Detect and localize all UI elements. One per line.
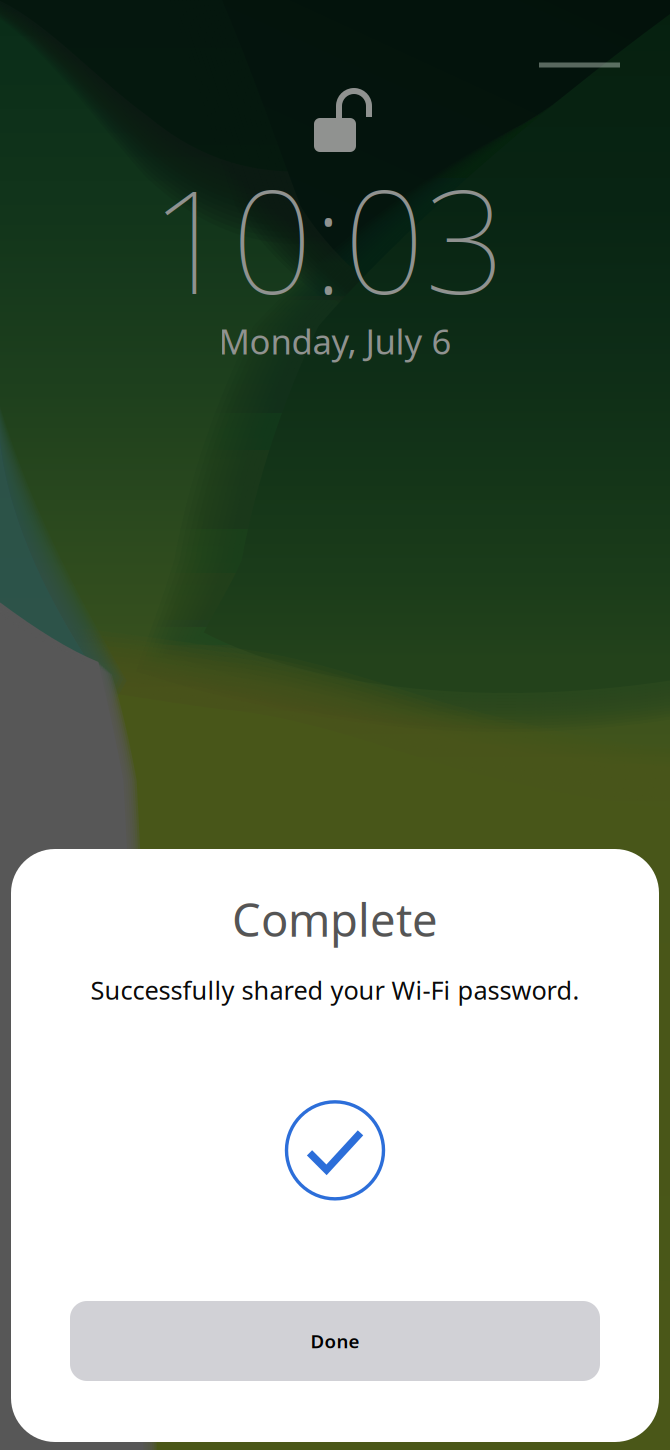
staticText: Successfully shared your Wi-Fi password. <box>90 973 579 1007</box>
staticText: Complete <box>232 889 438 949</box>
staticText: Monday, July 6 <box>218 318 451 364</box>
button[interactable]: Done <box>70 1301 600 1381</box>
staticText: 10:03 <box>150 144 505 333</box>
staticText: Done <box>310 1329 359 1353</box>
